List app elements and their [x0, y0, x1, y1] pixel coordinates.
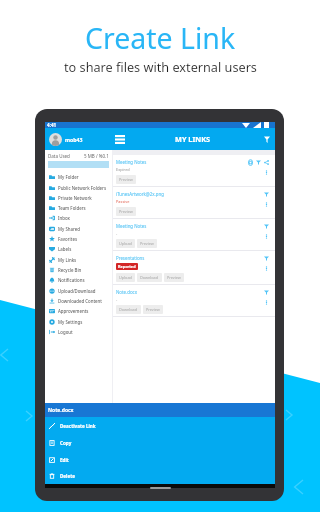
- staticText: Upload: [119, 241, 132, 246]
- staticText: Notifications: [58, 277, 85, 283]
- button[interactable]: Preview: [137, 239, 157, 248]
- button[interactable]: Presentations: [113, 251, 275, 285]
- staticText: Logout: [58, 329, 73, 335]
- button[interactable]: Private Network: [45, 193, 112, 203]
- button[interactable]: Share: [262, 158, 270, 166]
- button[interactable]: Favorites: [45, 234, 112, 244]
- staticText: 4:41: [47, 122, 57, 128]
- staticText: Presentations: [116, 255, 145, 261]
- staticText: Upload/Download: [58, 288, 96, 294]
- staticText: Approvements: [58, 308, 89, 314]
- staticText: Download: [119, 307, 138, 312]
- staticText: Inbox: [58, 215, 70, 221]
- button[interactable]: Preview: [116, 175, 136, 184]
- staticText: Note.docx: [48, 407, 74, 414]
- button[interactable]: Public Network Folders: [45, 183, 112, 193]
- button[interactable]: Downloaded Content: [45, 296, 112, 306]
- button[interactable]: More options: [262, 232, 270, 240]
- button[interactable]: Download: [116, 305, 141, 314]
- staticText: Preview: [140, 241, 154, 246]
- button[interactable]: My Settings: [45, 317, 112, 327]
- staticText: My Shared: [58, 226, 80, 232]
- button[interactable]: My Folder: [45, 172, 112, 182]
- staticText: Note.docx: [116, 289, 138, 295]
- button[interactable]: Menu: [109, 128, 131, 150]
- button[interactable]: More options: [262, 168, 270, 176]
- button[interactable]: Copy: [45, 434, 275, 451]
- button[interactable]: Upload/Download: [45, 286, 112, 296]
- staticText: Copy: [60, 440, 72, 446]
- staticText: 5 MB / %0.1: [84, 153, 109, 159]
- button[interactable]: Upload: [116, 273, 135, 282]
- button[interactable]: Preview: [164, 273, 184, 282]
- staticText: Preview: [119, 177, 133, 182]
- button[interactable]: Team Folders: [45, 203, 112, 213]
- staticText: Downloaded Content: [58, 298, 102, 304]
- button[interactable]: Inbox: [45, 213, 112, 223]
- button[interactable]: My Links: [45, 255, 112, 265]
- staticText: My Folder: [58, 174, 79, 180]
- staticText: Recycle Bin: [58, 267, 82, 273]
- staticText: mob43: [65, 136, 83, 143]
- button[interactable]: Meeting Notes: [113, 155, 275, 187]
- staticText: -: [116, 297, 118, 302]
- staticText: Create Link: [85, 19, 236, 58]
- button[interactable]: Delete: [45, 468, 275, 484]
- staticText: Download: [140, 275, 159, 280]
- staticText: Upload: [119, 275, 132, 280]
- button[interactable]: iTunesArtwork@2x.png: [113, 187, 275, 219]
- staticText: Deactivate Link: [60, 423, 96, 429]
- staticText: My Links: [58, 257, 77, 263]
- button[interactable]: Approvements: [45, 306, 112, 316]
- staticText: Preview: [167, 275, 181, 280]
- button[interactable]: Edit: [45, 451, 275, 468]
- staticText: Favorites: [58, 236, 77, 242]
- staticText: Meeting Notes: [116, 159, 147, 165]
- staticText: Public Network Folders: [58, 185, 107, 191]
- staticText: Data Used: [48, 153, 70, 159]
- button[interactable]: Preview: [116, 207, 136, 216]
- staticText: Team Folders: [58, 205, 86, 211]
- button[interactable]: Logout: [45, 327, 112, 337]
- staticText: -: [116, 231, 118, 236]
- staticText: MY LINKS: [175, 134, 211, 144]
- button[interactable]: Filter: [260, 133, 273, 146]
- button[interactable]: Notifications: [45, 275, 112, 285]
- staticText: Delete: [60, 473, 75, 479]
- staticText: Labels: [58, 246, 72, 252]
- button[interactable]: Note.docx: [113, 285, 275, 317]
- staticText: Passive: [116, 199, 130, 204]
- button[interactable]: Preview: [143, 305, 163, 314]
- button[interactable]: Recycle Bin: [45, 265, 112, 275]
- button[interactable]: Filter: [262, 190, 270, 198]
- button[interactable]: Filter: [262, 222, 270, 230]
- button[interactable]: Upload: [116, 239, 135, 248]
- button[interactable]: Filter: [262, 288, 270, 296]
- button[interactable]: Labels: [45, 244, 112, 254]
- button[interactable]: More options: [262, 264, 270, 272]
- staticText: Preview: [146, 307, 160, 312]
- staticText: Reported: [118, 264, 136, 269]
- button[interactable]: Deactivate Link: [45, 417, 275, 434]
- staticText: iTunesArtwork@2x.png: [116, 191, 164, 197]
- staticText: Meeting Notes: [116, 223, 147, 229]
- staticText: Preview: [119, 209, 133, 214]
- button[interactable]: Filter: [262, 254, 270, 262]
- staticText: Private Network: [58, 195, 92, 201]
- button[interactable]: More options: [262, 200, 270, 208]
- button[interactable]: More options: [262, 298, 270, 306]
- button[interactable]: Meeting Notes: [113, 219, 275, 251]
- staticText: My Settings: [58, 319, 83, 325]
- staticText: Expired: [116, 167, 130, 172]
- button[interactable]: Sort: [246, 158, 254, 166]
- button[interactable]: My Shared: [45, 224, 112, 234]
- button[interactable]: Download: [137, 273, 162, 282]
- staticText: to share files with external users: [64, 58, 257, 75]
- button[interactable]: Filter: [254, 158, 262, 166]
- staticText: Edit: [60, 457, 69, 463]
